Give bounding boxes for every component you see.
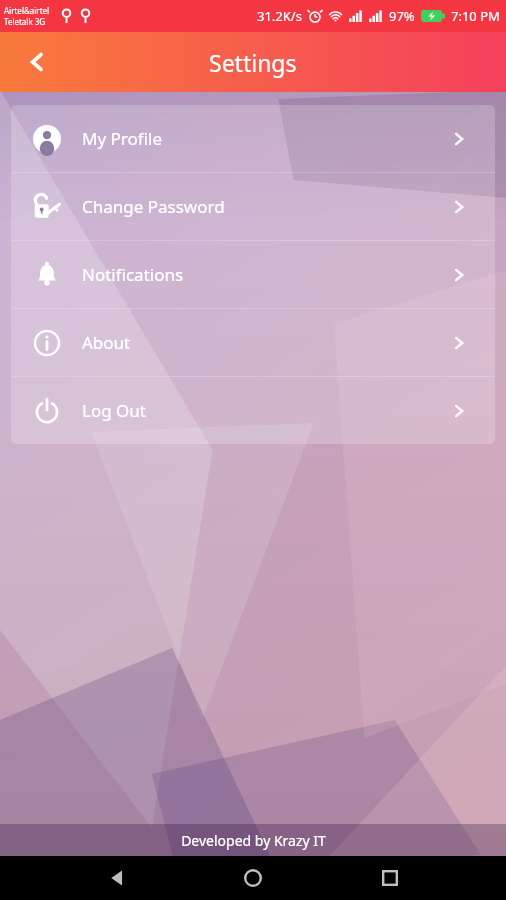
staticText: About <box>82 331 131 354</box>
button[interactable]: Notifications <box>11 241 495 308</box>
staticText: My Profile <box>82 127 162 150</box>
button[interactable]: Change Password <box>11 173 495 240</box>
staticText: 7:10 PM <box>451 7 500 25</box>
button[interactable]: My Profile <box>11 105 495 172</box>
button[interactable]: Home <box>233 858 273 898</box>
button[interactable]: Recent apps <box>370 858 410 898</box>
staticText: Settings <box>209 47 297 78</box>
staticText: Teletalk 3G <box>4 16 46 27</box>
button[interactable]: About <box>11 309 495 376</box>
staticText: 31.2K/s <box>257 7 302 25</box>
staticText: Notifications <box>82 263 184 286</box>
staticText: Airtel&airtel <box>4 5 50 16</box>
button[interactable]: Log Out <box>11 377 495 444</box>
button[interactable]: Back <box>97 858 137 898</box>
staticText: 97% <box>389 7 415 25</box>
staticText: Log Out <box>82 399 146 422</box>
staticText: Change Password <box>82 195 225 218</box>
staticText: Developed by Krazy IT <box>181 831 326 850</box>
button[interactable]: Back <box>14 39 60 85</box>
